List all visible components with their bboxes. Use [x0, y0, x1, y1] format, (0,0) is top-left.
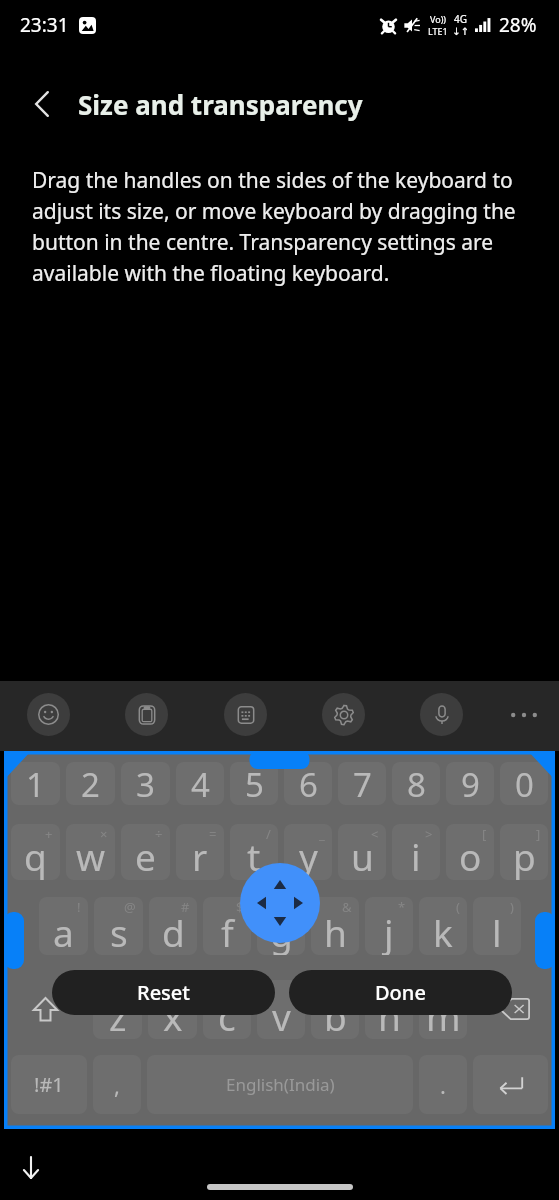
- button[interactable]: 8: [392, 762, 440, 805]
- staticText: 4G: [454, 12, 467, 26]
- staticText: b: [324, 991, 347, 1039]
- button[interactable]: n: [365, 980, 413, 1039]
- staticText: h: [324, 907, 347, 955]
- staticText: [: [482, 825, 487, 843]
- staticText: Size and transparency: [78, 87, 363, 122]
- staticText: y: [299, 831, 318, 880]
- staticText: 6: [299, 762, 318, 805]
- button[interactable]: Settings: [322, 693, 365, 736]
- staticText: u: [351, 831, 374, 880]
- staticText: 7: [353, 762, 372, 805]
- button[interactable]: q: [11, 824, 60, 880]
- staticText: a: [53, 907, 74, 955]
- button[interactable]: a: [39, 897, 88, 955]
- staticText: o: [459, 831, 482, 880]
- staticText: s: [110, 907, 128, 955]
- button[interactable]: h: [311, 897, 359, 955]
- staticText: 5: [245, 762, 264, 805]
- button[interactable]: o: [446, 824, 494, 880]
- staticText: &: [342, 898, 352, 916]
- staticText: ÷: [155, 825, 163, 843]
- staticText: ↓↑: [452, 26, 469, 38]
- staticText: _: [319, 825, 325, 843]
- staticText: 9: [461, 762, 480, 805]
- button[interactable]: i: [392, 824, 440, 880]
- staticText: ,: [114, 1070, 120, 1100]
- button[interactable]: Text modes: [224, 693, 267, 736]
- staticText: 2: [81, 762, 100, 805]
- button[interactable]: Backspace: [473, 980, 548, 1039]
- button[interactable]: Done: [289, 970, 512, 1015]
- staticText: %: [287, 898, 298, 916]
- staticText: k: [433, 907, 453, 955]
- button[interactable]: 6: [284, 762, 332, 805]
- button[interactable]: v: [257, 980, 305, 1039]
- button[interactable]: r: [176, 824, 224, 880]
- button[interactable]: ,: [93, 1055, 141, 1114]
- button[interactable]: Clipboard: [125, 693, 168, 736]
- button[interactable]: Enter: [473, 1055, 548, 1114]
- button[interactable]: More options: [503, 694, 545, 736]
- button[interactable]: x: [148, 980, 197, 1039]
- button[interactable]: 1: [11, 762, 60, 805]
- button[interactable]: j: [365, 897, 413, 955]
- staticText: 23:31: [20, 12, 69, 38]
- button[interactable]: z: [93, 980, 142, 1039]
- staticText: f: [221, 907, 234, 955]
- button[interactable]: w: [66, 824, 115, 880]
- button[interactable]: 5: [230, 762, 278, 805]
- button[interactable]: Reset: [52, 970, 275, 1015]
- button[interactable]: u: [338, 824, 386, 880]
- staticText: 3: [136, 762, 155, 805]
- staticText: w: [76, 831, 106, 880]
- staticText: r: [192, 831, 208, 880]
- staticText: n: [378, 991, 401, 1039]
- button[interactable]: y: [284, 824, 332, 880]
- button[interactable]: !#1: [11, 1055, 87, 1114]
- staticText: English(India): [226, 1073, 335, 1096]
- button[interactable]: Emoji: [27, 693, 70, 736]
- staticText: e: [135, 831, 156, 880]
- button[interactable]: 3: [121, 762, 170, 805]
- button[interactable]: Move keyboard: [240, 863, 320, 943]
- button[interactable]: s: [94, 897, 143, 955]
- button[interactable]: Shift: [11, 980, 87, 1039]
- button[interactable]: Voice input: [420, 693, 463, 736]
- button[interactable]: m: [419, 980, 467, 1039]
- staticText: Done: [375, 979, 426, 1006]
- button[interactable]: l: [473, 897, 521, 955]
- button[interactable]: d: [149, 897, 197, 955]
- button[interactable]: English(India): [147, 1055, 413, 1114]
- staticText: t: [247, 831, 261, 880]
- button[interactable]: 0: [500, 762, 548, 805]
- button[interactable]: 2: [66, 762, 115, 805]
- staticText: d: [162, 907, 185, 955]
- staticText: v: [272, 991, 291, 1039]
- button[interactable]: k: [419, 897, 467, 955]
- staticText: j: [384, 907, 394, 955]
- staticText: p: [513, 831, 536, 880]
- staticText: 8: [407, 762, 426, 805]
- button[interactable]: e: [121, 824, 170, 880]
- staticText: $: [236, 898, 244, 916]
- staticText: *: [398, 898, 406, 916]
- button[interactable]: c: [203, 980, 251, 1039]
- button[interactable]: 7: [338, 762, 386, 805]
- button[interactable]: t: [230, 824, 278, 880]
- button[interactable]: 9: [446, 762, 494, 805]
- staticText: !: [77, 898, 81, 916]
- button[interactable]: p: [500, 824, 548, 880]
- button[interactable]: .: [419, 1055, 467, 1114]
- staticText: #: [181, 898, 190, 916]
- staticText: 4: [191, 762, 210, 805]
- staticText: i: [411, 831, 421, 880]
- staticText: x: [163, 991, 183, 1039]
- button[interactable]: 4: [176, 762, 224, 805]
- button[interactable]: f: [203, 897, 251, 955]
- button[interactable]: b: [311, 980, 359, 1039]
- button[interactable]: Back: [20, 82, 64, 126]
- button[interactable]: Hide keyboard: [13, 1149, 49, 1185]
- staticText: ]: [536, 825, 541, 843]
- button[interactable]: g: [257, 897, 305, 955]
- staticText: 28%: [499, 12, 537, 38]
